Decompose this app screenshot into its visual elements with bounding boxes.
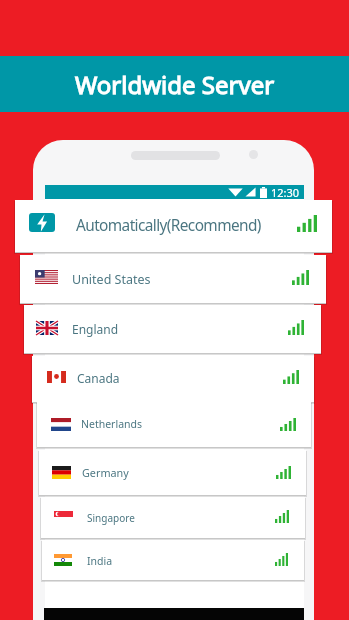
staticText: Singapore — [87, 511, 135, 525]
staticText: Netherlands — [81, 417, 143, 431]
staticText: Automatically(Recommend) — [76, 215, 261, 236]
button[interactable]: Singapore — [41, 497, 305, 539]
button[interactable]: India — [42, 540, 304, 581]
staticText: England — [72, 321, 119, 337]
button[interactable]: United States — [20, 255, 326, 304]
staticText: United States — [72, 271, 151, 288]
button[interactable]: Germany — [39, 450, 306, 496]
staticText: Worldwide Server — [75, 68, 275, 101]
staticText: 12:30 — [271, 185, 300, 199]
button[interactable]: England — [24, 305, 321, 354]
button[interactable]: Netherlands — [37, 402, 311, 448]
staticText: India — [87, 554, 113, 568]
button[interactable]: Automatically(Recommend) — [15, 200, 332, 253]
staticText: Germany — [82, 465, 129, 480]
button[interactable]: Canada — [32, 356, 314, 403]
staticText: Canada — [77, 370, 120, 386]
